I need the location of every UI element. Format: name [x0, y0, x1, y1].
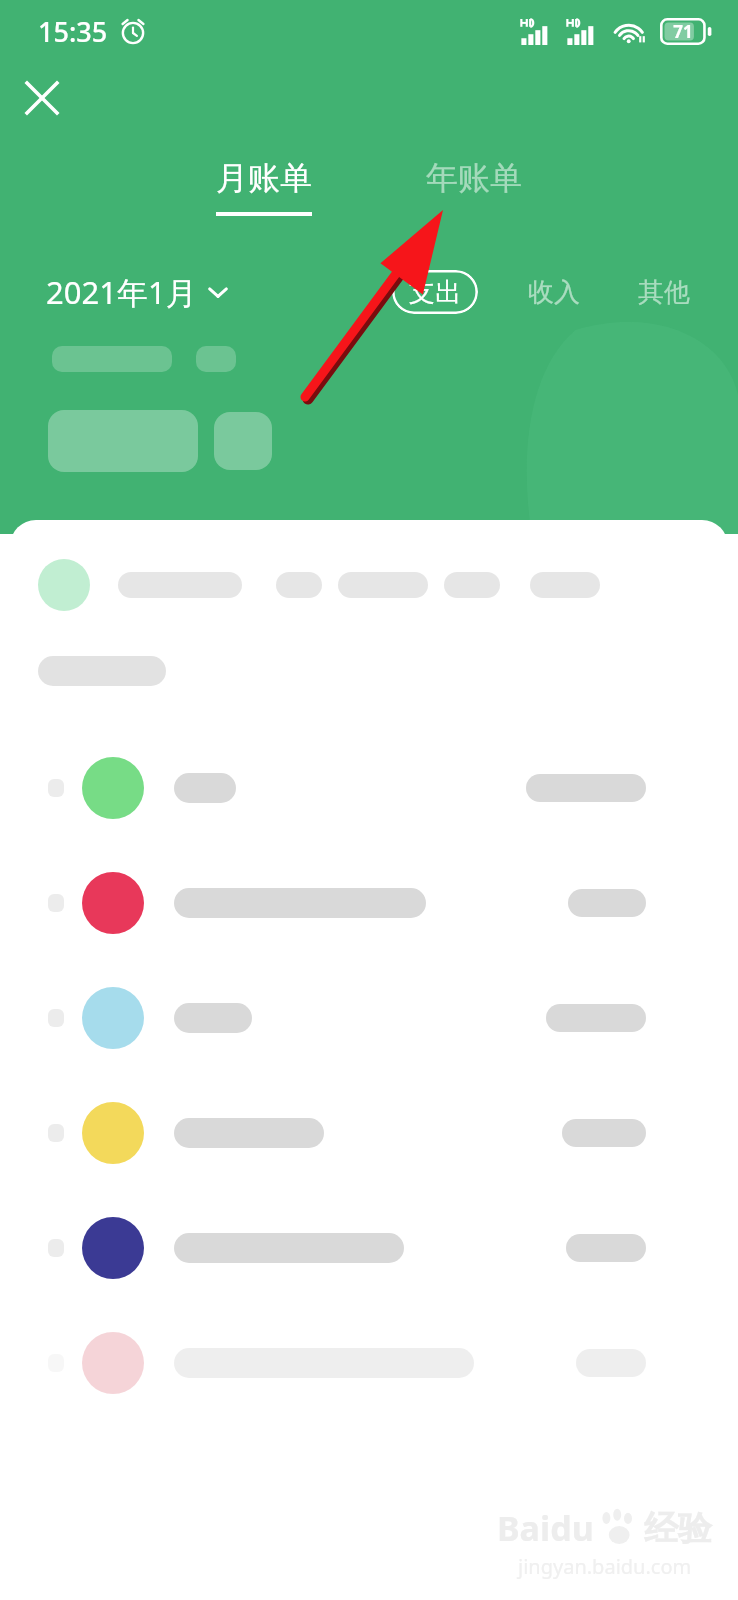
staticText: 其他: [638, 276, 690, 309]
button[interactable]: [0, 1190, 738, 1305]
button[interactable]: [0, 542, 738, 628]
button[interactable]: 支出: [392, 270, 478, 314]
button[interactable]: [0, 1075, 738, 1190]
staticText: Baidu: [497, 1505, 594, 1551]
staticText: 71: [673, 20, 693, 43]
button[interactable]: 2021年1月: [46, 271, 229, 313]
button[interactable]: 月账单: [192, 152, 336, 222]
button[interactable]: [0, 1305, 738, 1420]
button[interactable]: 收入: [524, 270, 584, 315]
button[interactable]: [0, 730, 738, 845]
staticText: 收入: [528, 276, 580, 309]
staticText: 年账单: [426, 158, 522, 198]
staticText: 15:35: [38, 13, 108, 50]
button[interactable]: [0, 845, 738, 960]
button[interactable]: 年账单: [402, 152, 546, 222]
button[interactable]: Close: [14, 70, 70, 126]
staticText: jingyan.baidu.com: [518, 1553, 692, 1580]
staticText: 2021年1月: [46, 271, 197, 313]
button[interactable]: 其他: [634, 270, 694, 315]
button[interactable]: [0, 960, 738, 1075]
staticText: 支出: [409, 276, 461, 309]
staticText: 经验: [644, 1507, 712, 1550]
staticText: 月账单: [216, 158, 312, 198]
